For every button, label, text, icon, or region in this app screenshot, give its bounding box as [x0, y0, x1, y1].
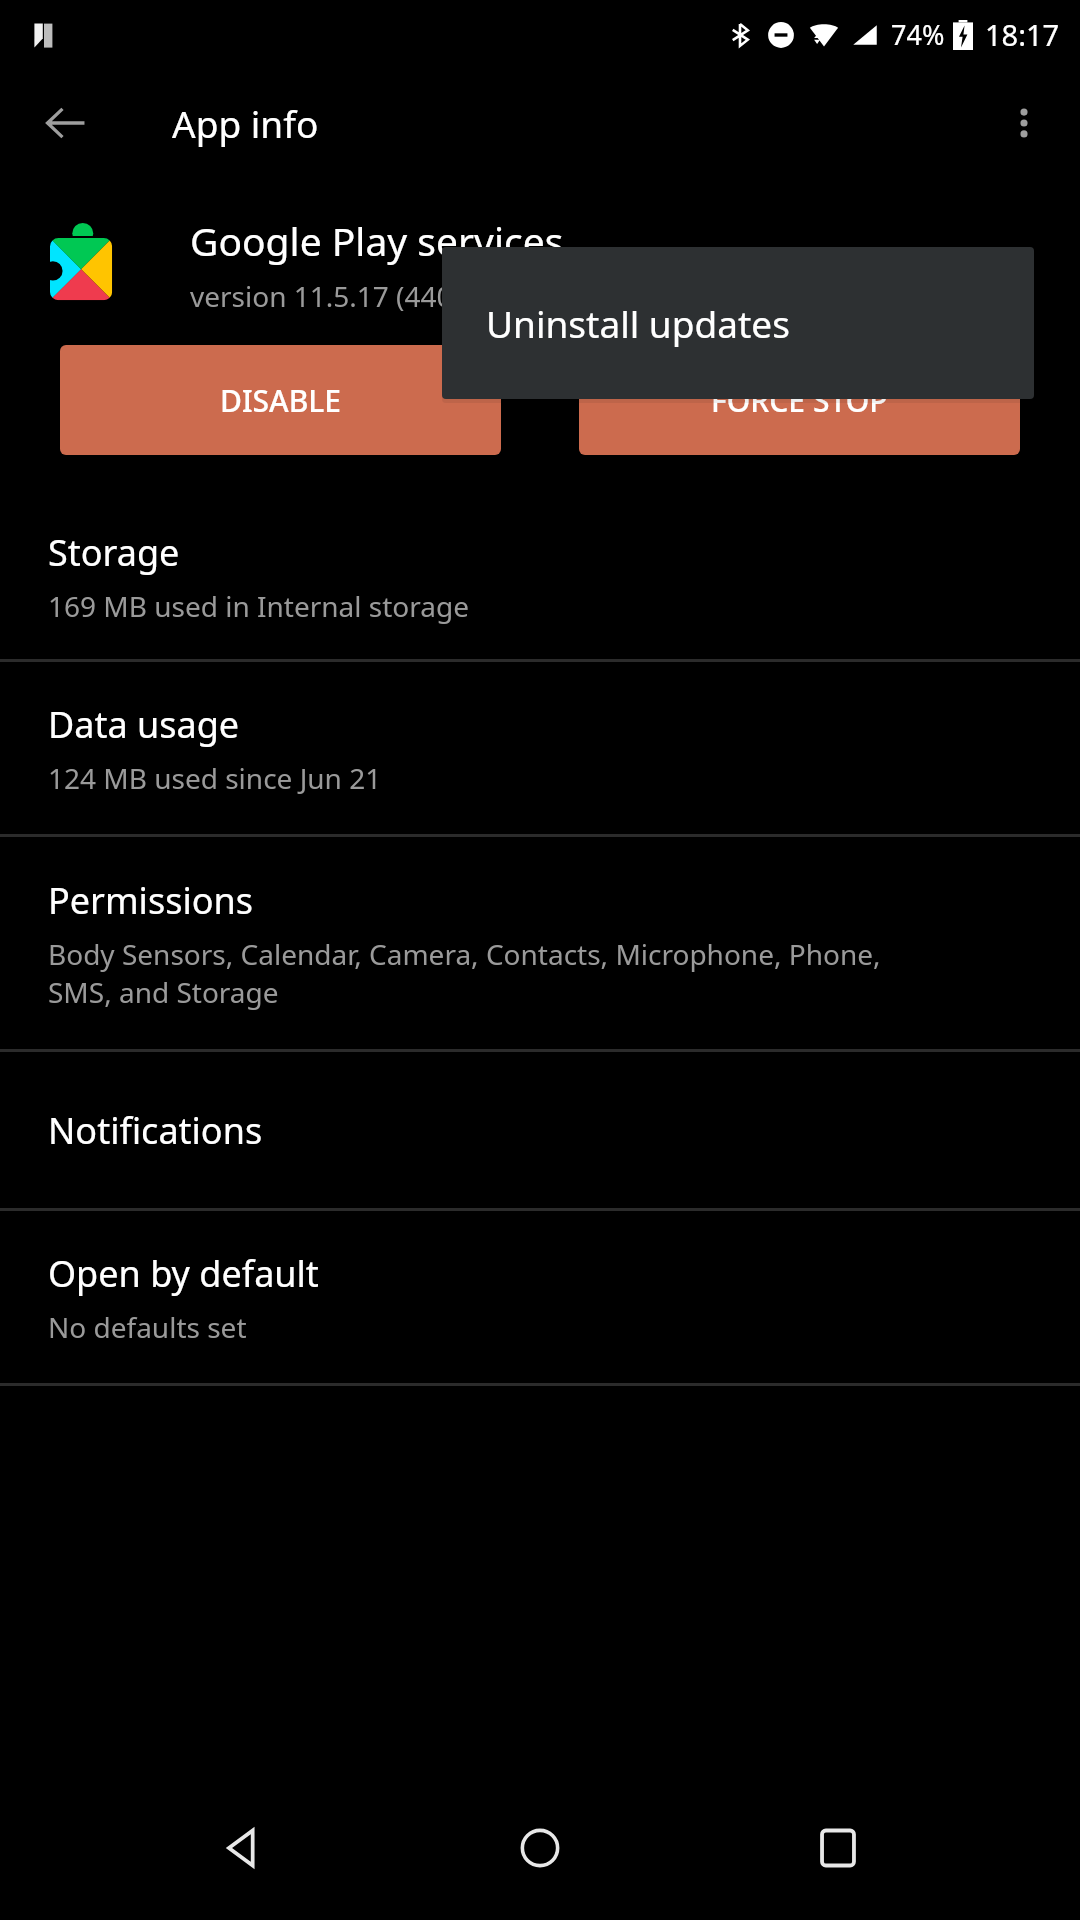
- staticText: DISABLE: [220, 380, 342, 421]
- staticText: Body Sensors, Calendar, Camera, Contacts…: [48, 935, 881, 1011]
- staticText: Uninstall updates: [486, 298, 790, 348]
- staticText: version 11.5.17 (440-169142033): [190, 277, 615, 315]
- staticText: Permissions: [48, 876, 253, 925]
- button[interactable]: More options: [988, 87, 1060, 159]
- staticText: Data usage: [48, 700, 240, 749]
- button[interactable]: FORCE STOP: [579, 345, 1020, 455]
- button[interactable]: Home: [485, 1793, 595, 1903]
- staticText: App info: [172, 98, 319, 148]
- staticText: 169 MB used in Internal storage: [48, 587, 469, 625]
- button[interactable]: Back: [188, 1793, 298, 1903]
- staticText: Open by default: [48, 1249, 319, 1298]
- staticText: Storage: [48, 528, 180, 577]
- staticText: FORCE STOP: [711, 380, 888, 421]
- button[interactable]: Data usage: [0, 662, 1080, 834]
- button[interactable]: Back: [30, 87, 102, 159]
- button[interactable]: Recent apps: [783, 1793, 893, 1903]
- staticText: 74%: [891, 16, 945, 53]
- staticText: Notifications: [48, 1106, 263, 1155]
- staticText: 18:17: [985, 15, 1060, 54]
- staticText: Google Play services: [190, 214, 564, 267]
- button[interactable]: DISABLE: [60, 345, 501, 455]
- staticText: 124 MB used since Jun 21: [48, 759, 382, 797]
- button[interactable]: Notifications: [0, 1052, 1080, 1208]
- button[interactable]: Uninstall updates: [442, 247, 1034, 399]
- staticText: No defaults set: [48, 1308, 247, 1346]
- button[interactable]: Permissions: [0, 837, 1080, 1049]
- button[interactable]: Storage: [0, 493, 1080, 659]
- button[interactable]: Open by default: [0, 1211, 1080, 1383]
